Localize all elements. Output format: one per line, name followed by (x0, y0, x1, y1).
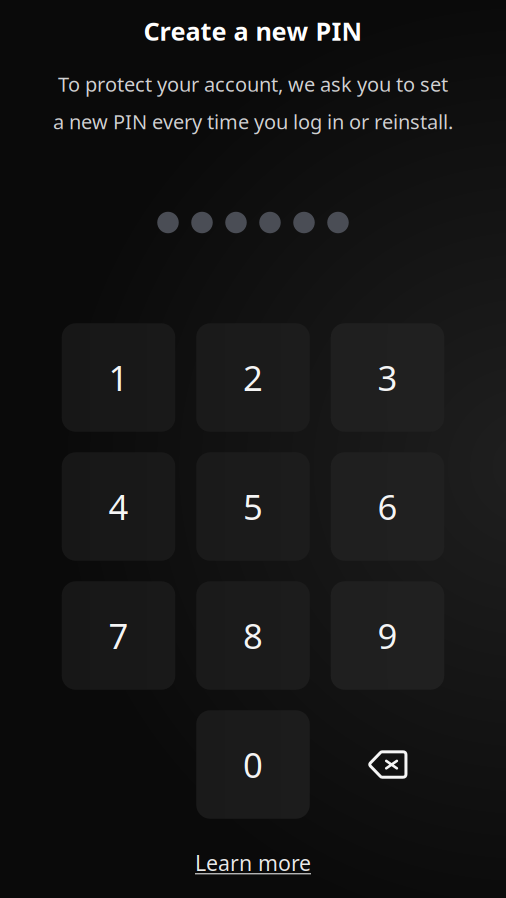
staticText: 5 (243, 483, 263, 529)
button[interactable]: 5 (196, 452, 310, 561)
button[interactable]: 3 (331, 323, 444, 432)
button[interactable]: 9 (331, 581, 444, 690)
staticText: 9 (377, 612, 397, 658)
staticText: 1 (108, 354, 128, 400)
staticText: Create a new PIN (143, 14, 362, 48)
button[interactable]: 6 (331, 452, 444, 561)
staticText: 8 (243, 612, 263, 658)
staticText: 2 (243, 354, 263, 400)
button[interactable]: 1 (62, 323, 175, 432)
button[interactable]: 2 (196, 323, 310, 432)
staticText: 3 (377, 354, 397, 400)
staticText: To protect your account, we ask you to s… (58, 71, 448, 97)
staticText: 4 (108, 483, 128, 529)
staticText: 0 (243, 741, 263, 787)
button[interactable]: Delete (331, 710, 444, 819)
staticText: 7 (108, 612, 128, 658)
button[interactable]: 8 (196, 581, 310, 690)
button[interactable]: Learn more (195, 849, 311, 877)
staticText: 6 (377, 483, 397, 529)
button[interactable]: 4 (62, 452, 175, 561)
button[interactable]: 7 (62, 581, 175, 690)
staticText: Learn more (195, 849, 311, 877)
button[interactable]: 0 (196, 710, 310, 819)
staticText: a new PIN every time you log in or reins… (53, 108, 453, 135)
